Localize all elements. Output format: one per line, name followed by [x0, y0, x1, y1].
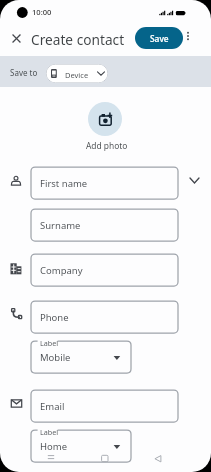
button[interactable]: Email	[31, 390, 178, 422]
staticText: Create contact	[31, 30, 125, 49]
staticText: First name	[40, 177, 88, 190]
button[interactable]: Company	[31, 254, 178, 286]
staticText: Save	[150, 33, 169, 44]
staticText: Mobile	[40, 351, 71, 364]
staticText: Label	[40, 338, 59, 348]
button[interactable]: Save	[135, 27, 183, 49]
staticText: Email	[40, 400, 65, 413]
staticText: Phone	[40, 311, 69, 324]
button[interactable]: More options	[180, 28, 196, 44]
staticText: Label	[40, 427, 59, 437]
staticText: 10:00	[32, 7, 52, 17]
staticText: Surname	[40, 219, 81, 232]
button[interactable]: Close	[6, 28, 26, 48]
staticText: Home	[40, 440, 68, 453]
staticText: Company	[40, 264, 83, 277]
staticText: Save to	[10, 67, 38, 78]
staticText: Device	[65, 70, 89, 80]
button[interactable]: Label	[31, 341, 131, 373]
button[interactable]: Surname	[31, 209, 178, 241]
button[interactable]: Label	[31, 430, 131, 462]
button[interactable]: First name	[31, 167, 178, 199]
button[interactable]: Device	[46, 64, 108, 83]
button[interactable]: Expand name fields	[186, 172, 203, 189]
button[interactable]: Home	[94, 450, 116, 468]
button[interactable]: Add photo	[88, 102, 122, 136]
staticText: Add photo	[86, 140, 128, 151]
button[interactable]: Phone	[31, 301, 178, 333]
button[interactable]: Recent apps	[40, 450, 64, 468]
button[interactable]: Back	[147, 450, 169, 468]
